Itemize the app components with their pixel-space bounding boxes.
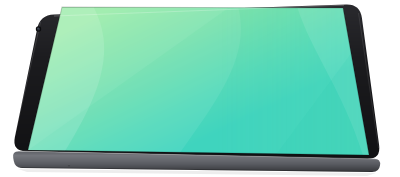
button[interactable]: Tablet product photo <box>0 0 400 177</box>
